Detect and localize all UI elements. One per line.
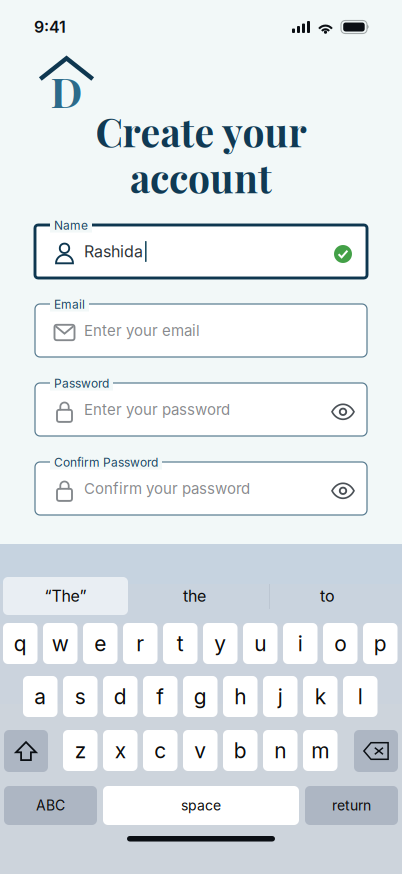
button[interactable]: Enter your email — [35, 304, 367, 357]
staticText: g — [194, 684, 207, 709]
staticText: m — [311, 738, 329, 763]
staticText: f — [156, 684, 164, 709]
button[interactable]: f — [143, 676, 177, 717]
button[interactable]: ABC — [4, 786, 97, 825]
button[interactable]: space — [103, 786, 299, 825]
staticText: 9:41 — [34, 17, 66, 37]
staticText: space — [181, 797, 221, 814]
button[interactable]: x — [103, 730, 137, 771]
staticText: the — [183, 586, 206, 606]
staticText: return — [332, 797, 371, 814]
button[interactable]: a — [23, 676, 57, 717]
staticText: to — [320, 586, 335, 606]
staticText: v — [194, 738, 206, 763]
staticText: q — [14, 631, 27, 656]
staticText: Rashida — [84, 242, 143, 261]
staticText: Name — [54, 218, 88, 232]
staticText: h — [234, 684, 246, 709]
staticText: c — [154, 738, 166, 763]
button[interactable]: the — [128, 577, 261, 615]
button[interactable]: s — [63, 676, 97, 717]
button[interactable]: y — [203, 623, 237, 664]
button[interactable]: r — [123, 623, 157, 664]
staticText: y — [214, 631, 226, 656]
staticText: s — [75, 684, 86, 709]
button[interactable]: “The” — [3, 577, 128, 615]
staticText: t — [177, 631, 184, 656]
button[interactable]: g — [183, 676, 217, 717]
button[interactable]: p — [363, 623, 397, 664]
staticText: Enter your password — [84, 400, 230, 418]
staticText: d — [114, 684, 127, 709]
staticText: z — [75, 738, 86, 763]
button[interactable]: c — [143, 730, 177, 771]
staticText: n — [274, 738, 286, 763]
button[interactable]: h — [223, 676, 257, 717]
staticText: k — [315, 684, 326, 709]
button[interactable]: v — [183, 730, 217, 771]
staticText: Confirm Password — [54, 455, 158, 469]
staticText: x — [115, 738, 126, 763]
staticText: i — [298, 631, 303, 656]
button[interactable]: Show password — [331, 402, 355, 421]
staticText: b — [234, 738, 247, 763]
staticText: u — [254, 631, 266, 656]
button[interactable]: i — [283, 623, 317, 664]
button[interactable]: Show confirm password — [331, 481, 355, 500]
button[interactable]: o — [323, 623, 357, 664]
staticText: Email — [54, 297, 85, 311]
staticText: p — [374, 631, 387, 656]
staticText: e — [94, 631, 106, 656]
button[interactable]: return — [305, 786, 398, 825]
staticText: l — [358, 684, 363, 709]
staticText: Enter your email — [84, 321, 200, 339]
staticText: a — [34, 684, 46, 709]
staticText: r — [136, 631, 144, 656]
button[interactable]: Shift — [4, 730, 48, 772]
staticText: D — [50, 64, 82, 118]
button[interactable]: u — [243, 623, 277, 664]
staticText: ABC — [36, 797, 65, 814]
staticText: j — [278, 684, 283, 709]
button[interactable]: Confirm your password — [35, 462, 367, 515]
button[interactable]: d — [103, 676, 137, 717]
button[interactable]: e — [83, 623, 117, 664]
staticText: “The” — [44, 586, 86, 606]
button[interactable]: Enter your password — [35, 383, 367, 436]
staticText: w — [52, 631, 69, 656]
button[interactable]: Delete — [354, 730, 398, 772]
button[interactable]: n — [263, 730, 297, 771]
button[interactable]: q — [3, 623, 37, 664]
button[interactable]: t — [163, 623, 197, 664]
button[interactable]: j — [263, 676, 297, 717]
button[interactable]: b — [223, 730, 257, 771]
button[interactable]: to — [261, 577, 394, 615]
button[interactable]: Rashida — [35, 225, 367, 278]
button[interactable]: l — [343, 676, 377, 717]
button[interactable]: k — [303, 676, 337, 717]
staticText: Confirm your password — [84, 479, 250, 497]
staticText: Password — [54, 376, 109, 390]
button[interactable]: m — [303, 730, 337, 771]
staticText: account — [130, 151, 272, 203]
button[interactable]: w — [43, 623, 77, 664]
staticText: Create your — [95, 105, 306, 157]
button[interactable]: z — [63, 730, 97, 771]
staticText: o — [334, 631, 346, 656]
